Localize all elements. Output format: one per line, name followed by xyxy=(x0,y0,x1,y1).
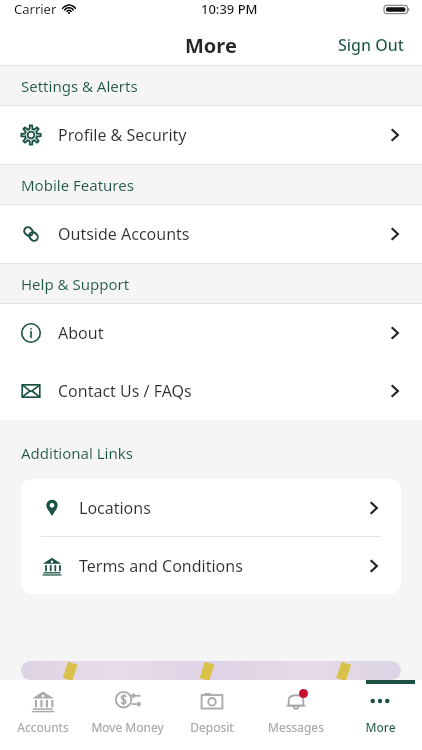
button[interactable]: Move Money xyxy=(85,688,170,735)
staticText: Profile & Security xyxy=(58,124,187,146)
staticText: Settings & Alerts xyxy=(21,76,138,96)
staticText: Outside Accounts xyxy=(58,223,190,245)
button[interactable]: Sign Out xyxy=(320,26,422,64)
staticText: Move Money xyxy=(91,719,164,735)
staticText: Terms and Conditions xyxy=(79,555,243,577)
staticText: Messages xyxy=(268,719,324,735)
staticText: Contact Us / FAQs xyxy=(58,380,192,402)
button[interactable]: Deposit xyxy=(170,688,254,735)
button[interactable]: About xyxy=(0,304,422,362)
staticText: More xyxy=(365,719,396,735)
staticText: Carrier xyxy=(14,0,57,18)
staticText: More xyxy=(185,32,237,59)
staticText: Locations xyxy=(79,497,151,519)
button[interactable]: Terms and Conditions xyxy=(21,537,401,594)
button[interactable]: More xyxy=(338,688,422,735)
staticText: Mobile Features xyxy=(21,175,134,195)
button[interactable]: Messages xyxy=(254,688,338,735)
button[interactable]: Locations xyxy=(21,479,401,536)
button[interactable]: Accounts xyxy=(0,688,85,735)
button[interactable]: Contact Us / FAQs xyxy=(0,362,422,420)
staticText: 10:39 PM xyxy=(201,0,258,18)
staticText: Deposit xyxy=(190,719,234,735)
button[interactable]: Profile & Security xyxy=(0,106,422,164)
staticText: Sign Out xyxy=(338,34,404,56)
button[interactable]: Outside Accounts xyxy=(0,205,422,263)
staticText: About xyxy=(58,322,104,344)
staticText: Accounts xyxy=(17,719,69,735)
staticText: Additional Links xyxy=(21,443,133,463)
staticText: Help & Support xyxy=(21,274,130,294)
